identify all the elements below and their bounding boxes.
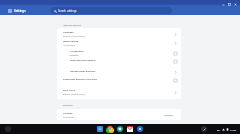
button[interactable]: Close [232, 1, 238, 7]
button[interactable]: Language [57, 29, 181, 38]
staticText: English (United States) [63, 35, 86, 38]
staticText: Input method [63, 40, 79, 43]
staticText: EN [217, 128, 221, 131]
button[interactable]: Location [57, 110, 181, 119]
button[interactable]: Change [159, 111, 178, 118]
staticText: Manage input methods [70, 70, 96, 73]
staticText: Show advanced options [70, 59, 96, 62]
button[interactable]: System status [216, 128, 238, 131]
staticText: Spell check [63, 89, 76, 92]
staticText: US keyboard [70, 50, 84, 53]
button[interactable]: Open [172, 40, 178, 46]
button[interactable]: Show advanced options [57, 57, 181, 64]
staticText: English (United States) [63, 93, 86, 96]
button[interactable]: Launcher [5, 126, 11, 132]
staticText: Downloads [63, 104, 73, 106]
button[interactable]: Open [172, 31, 178, 37]
button[interactable]: Gmail [126, 125, 134, 133]
staticText: Search settings [58, 9, 77, 13]
staticText: Settings [14, 9, 26, 13]
button[interactable]: Toggle [172, 50, 178, 56]
button[interactable]: Open [172, 69, 178, 75]
button[interactable]: Toggle [172, 77, 178, 83]
button[interactable]: Search settings [51, 7, 172, 14]
button[interactable]: US keyboard [57, 48, 181, 57]
button[interactable]: Main menu [6, 7, 13, 14]
button[interactable]: Input method [57, 38, 181, 47]
staticText: Languages and input [63, 24, 82, 26]
button[interactable]: Files [96, 125, 104, 133]
button[interactable]: Chrome [106, 125, 114, 133]
staticText: Language [63, 31, 74, 34]
button[interactable]: Manage input methods [57, 68, 181, 75]
staticText: Enabled [70, 54, 79, 57]
button[interactable]: Minimize [220, 1, 226, 7]
staticText: Downloads [63, 116, 74, 119]
staticText: Show input options in the shelf [63, 78, 97, 81]
button[interactable]: Duo [116, 125, 124, 133]
button[interactable]: Spell check [57, 87, 181, 96]
staticText: Change [164, 113, 173, 116]
staticText: 11:20 [230, 128, 237, 131]
button[interactable]: Toggle [172, 58, 178, 64]
button[interactable]: Assistant [136, 125, 144, 133]
staticText: Location [63, 112, 73, 115]
staticText: US keyboard [63, 44, 76, 47]
button[interactable]: Stylus tools [201, 126, 207, 132]
button[interactable]: Open [172, 89, 178, 95]
button[interactable]: Maximize [226, 1, 232, 7]
button[interactable]: Show input options in the shelf [57, 76, 181, 83]
